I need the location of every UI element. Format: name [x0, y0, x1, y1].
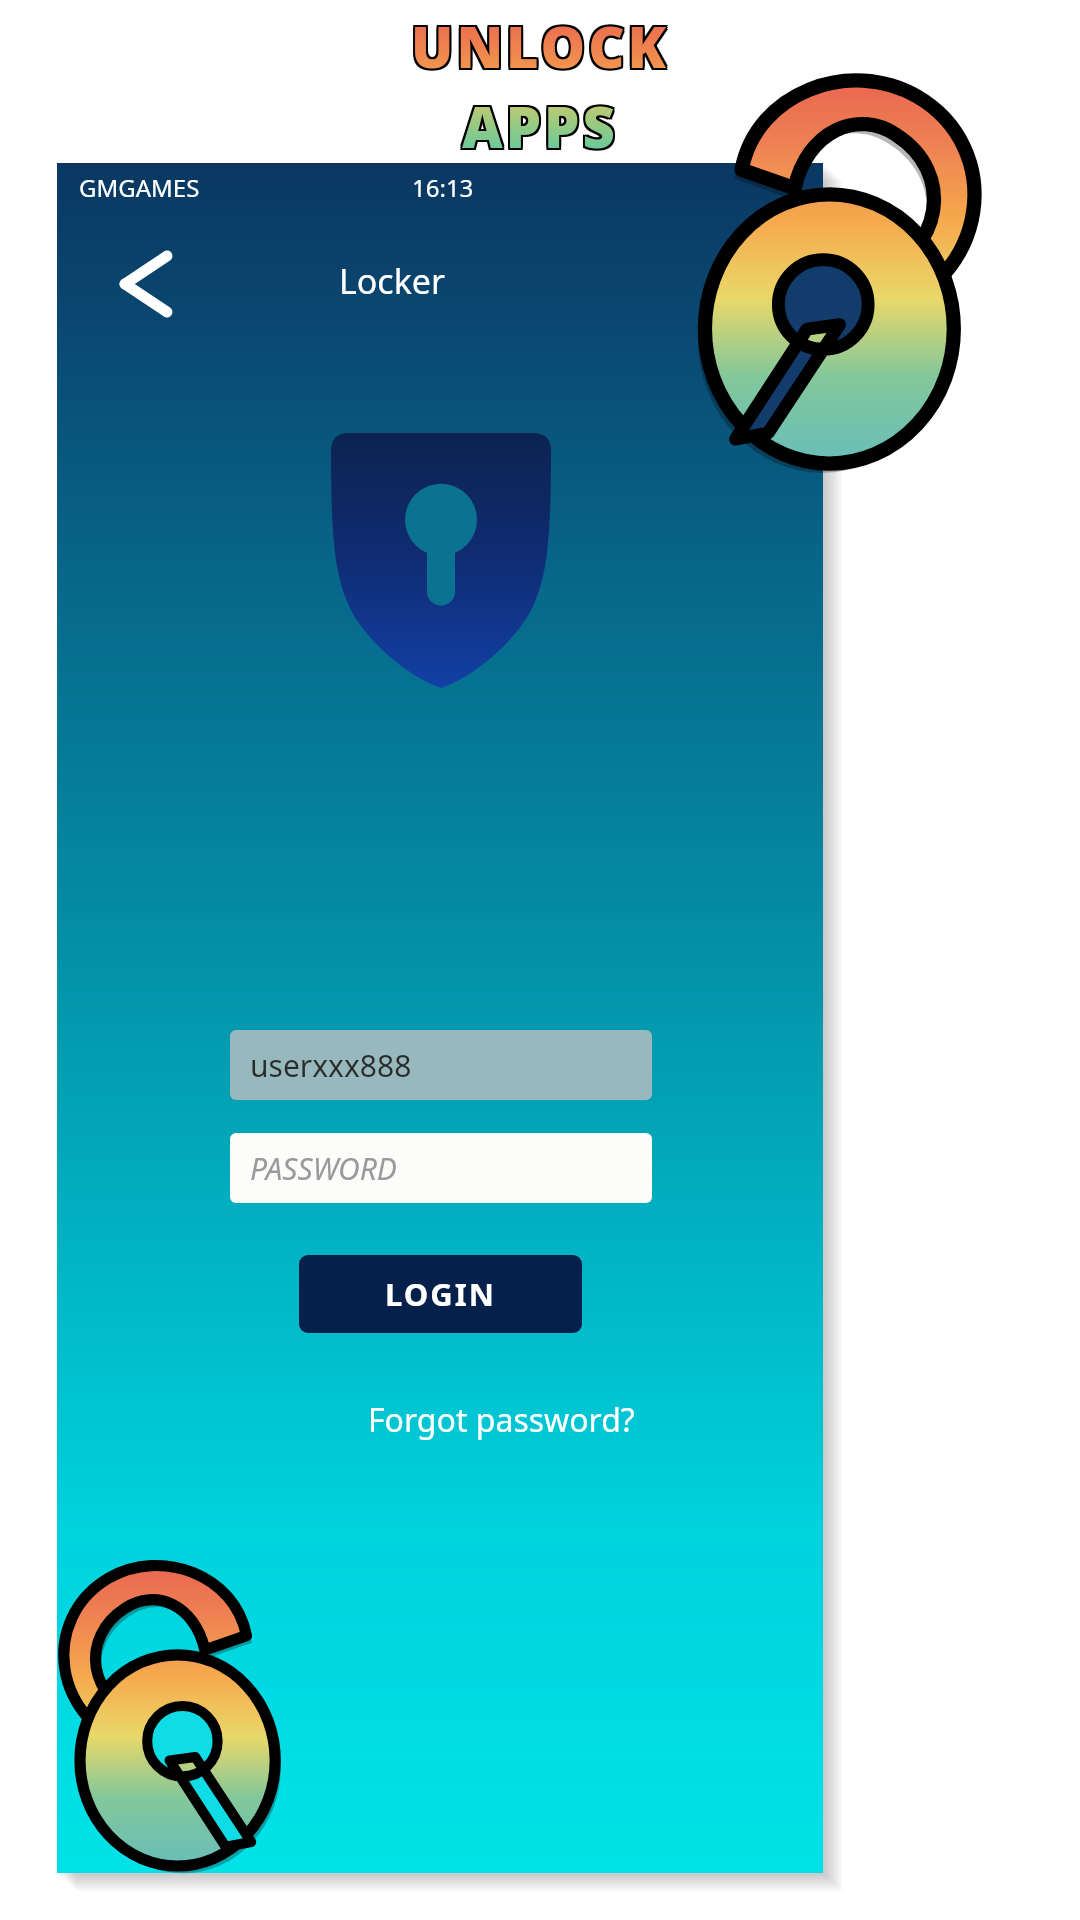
staticText: APPS — [464, 88, 620, 164]
staticText: UNLOCK — [411, 10, 670, 86]
staticText: PASSWORD — [250, 1148, 397, 1189]
button[interactable]: Forgot password? — [362, 1392, 641, 1448]
staticText: APPS — [462, 86, 618, 162]
staticText: UNLOCK — [411, 8, 670, 84]
staticText: UNLOCK — [409, 10, 668, 86]
staticText: 16:13 — [412, 171, 474, 204]
button[interactable]: userxxx888 — [230, 1030, 652, 1100]
staticText: APPS — [462, 88, 618, 164]
staticText: Forgot password? — [368, 1398, 635, 1442]
staticText: GMGAMES — [79, 171, 200, 204]
staticText: APPS — [462, 90, 618, 166]
staticText: UNLOCK — [409, 8, 668, 84]
staticText: userxxx888 — [250, 1045, 412, 1086]
staticText: APPS — [464, 90, 620, 166]
staticText: APPS — [460, 88, 616, 164]
staticText: APPS — [460, 86, 616, 162]
staticText: LOGIN — [385, 1273, 496, 1315]
staticText: UNLOCK — [413, 10, 672, 86]
button[interactable]: PASSWORD — [230, 1133, 652, 1203]
staticText: APPS — [464, 86, 620, 162]
button[interactable]: LOGIN — [299, 1255, 582, 1333]
staticText: UNLOCK — [409, 6, 668, 82]
staticText: APPS — [460, 90, 616, 166]
button[interactable]: Back — [98, 238, 192, 330]
staticText: UNLOCK — [413, 8, 672, 84]
staticText: UNLOCK — [411, 6, 670, 82]
staticText: UNLOCK — [413, 6, 672, 82]
staticText: Locker — [57, 258, 727, 304]
